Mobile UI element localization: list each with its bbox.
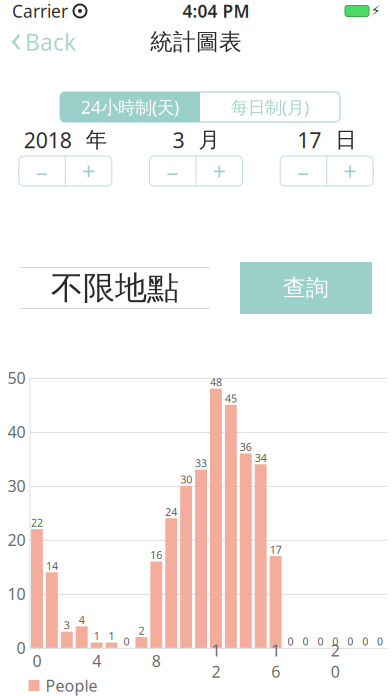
button[interactable]: + (327, 156, 373, 186)
staticText: 16 (150, 548, 162, 562)
staticText: 0 (16, 637, 25, 658)
staticText: 2018 (24, 126, 72, 154)
staticText: 0 (317, 634, 323, 648)
staticText: + (82, 155, 96, 187)
staticText: 8 (152, 650, 161, 671)
staticText: 48 (210, 375, 222, 389)
staticText: 1 (108, 629, 114, 643)
staticText: 20 (331, 640, 340, 682)
staticText: 12 (211, 640, 220, 682)
staticText: 22 (31, 515, 43, 530)
button[interactable]: 查詢 (240, 262, 372, 314)
staticText: 50 (7, 367, 25, 388)
staticText: 4:04 PM (182, 0, 249, 22)
staticText: 3 (64, 618, 70, 632)
staticText: 4 (79, 613, 85, 627)
staticText: – (36, 155, 48, 187)
button[interactable]: – (19, 156, 65, 186)
staticText: 0 (347, 634, 353, 648)
button[interactable]: 24小時制(天) (60, 92, 200, 122)
staticText: 3 (172, 126, 184, 154)
staticText: 17 (297, 126, 321, 154)
staticText: 不限地點 (51, 268, 179, 308)
button[interactable]: + (196, 156, 242, 186)
staticText: 24 (165, 505, 177, 519)
staticText: 33 (195, 456, 207, 470)
staticText: 36 (240, 440, 252, 454)
staticText: 30 (7, 475, 25, 496)
staticText: 16 (271, 640, 280, 682)
staticText: 10 (7, 583, 25, 604)
button[interactable]: Back (0, 21, 86, 63)
staticText: 日 (335, 127, 356, 153)
staticText: 0 (302, 634, 308, 648)
staticText: 月 (198, 127, 219, 153)
staticText: 年 (86, 127, 107, 153)
staticText: 17 (270, 542, 282, 557)
staticText: 1 (94, 629, 100, 643)
staticText: Carrier (12, 0, 68, 22)
staticText: 0 (123, 634, 129, 648)
staticText: 0 (287, 634, 293, 648)
staticText: 0 (377, 634, 383, 648)
staticText: 30 (180, 472, 192, 486)
staticText: 4 (92, 650, 101, 671)
staticText: People (45, 675, 97, 696)
button[interactable]: 每日制(月) (200, 92, 340, 122)
staticText: 45 (225, 391, 237, 405)
staticText: 40 (7, 421, 25, 442)
staticText: 20 (7, 529, 25, 550)
staticText: 查詢 (283, 274, 329, 302)
staticText: 統計圖表 (150, 28, 242, 56)
staticText: 24小時制(天) (81, 95, 179, 118)
staticText: – (297, 155, 309, 187)
staticText: 每日制(月) (231, 95, 309, 118)
staticText: ⚡︎ (371, 3, 380, 18)
staticText: 2 (138, 623, 144, 638)
button[interactable]: – (280, 156, 326, 186)
button[interactable]: + (66, 156, 112, 186)
staticText: + (343, 155, 357, 187)
staticText: 34 (255, 451, 267, 465)
staticText: 0 (362, 634, 368, 648)
staticText: 0 (32, 650, 41, 671)
staticText: + (212, 155, 226, 187)
button[interactable]: – (149, 156, 195, 186)
staticText: 0 (332, 634, 338, 648)
staticText: 14 (46, 559, 58, 573)
staticText: Back (25, 27, 76, 57)
staticText: – (166, 155, 178, 187)
